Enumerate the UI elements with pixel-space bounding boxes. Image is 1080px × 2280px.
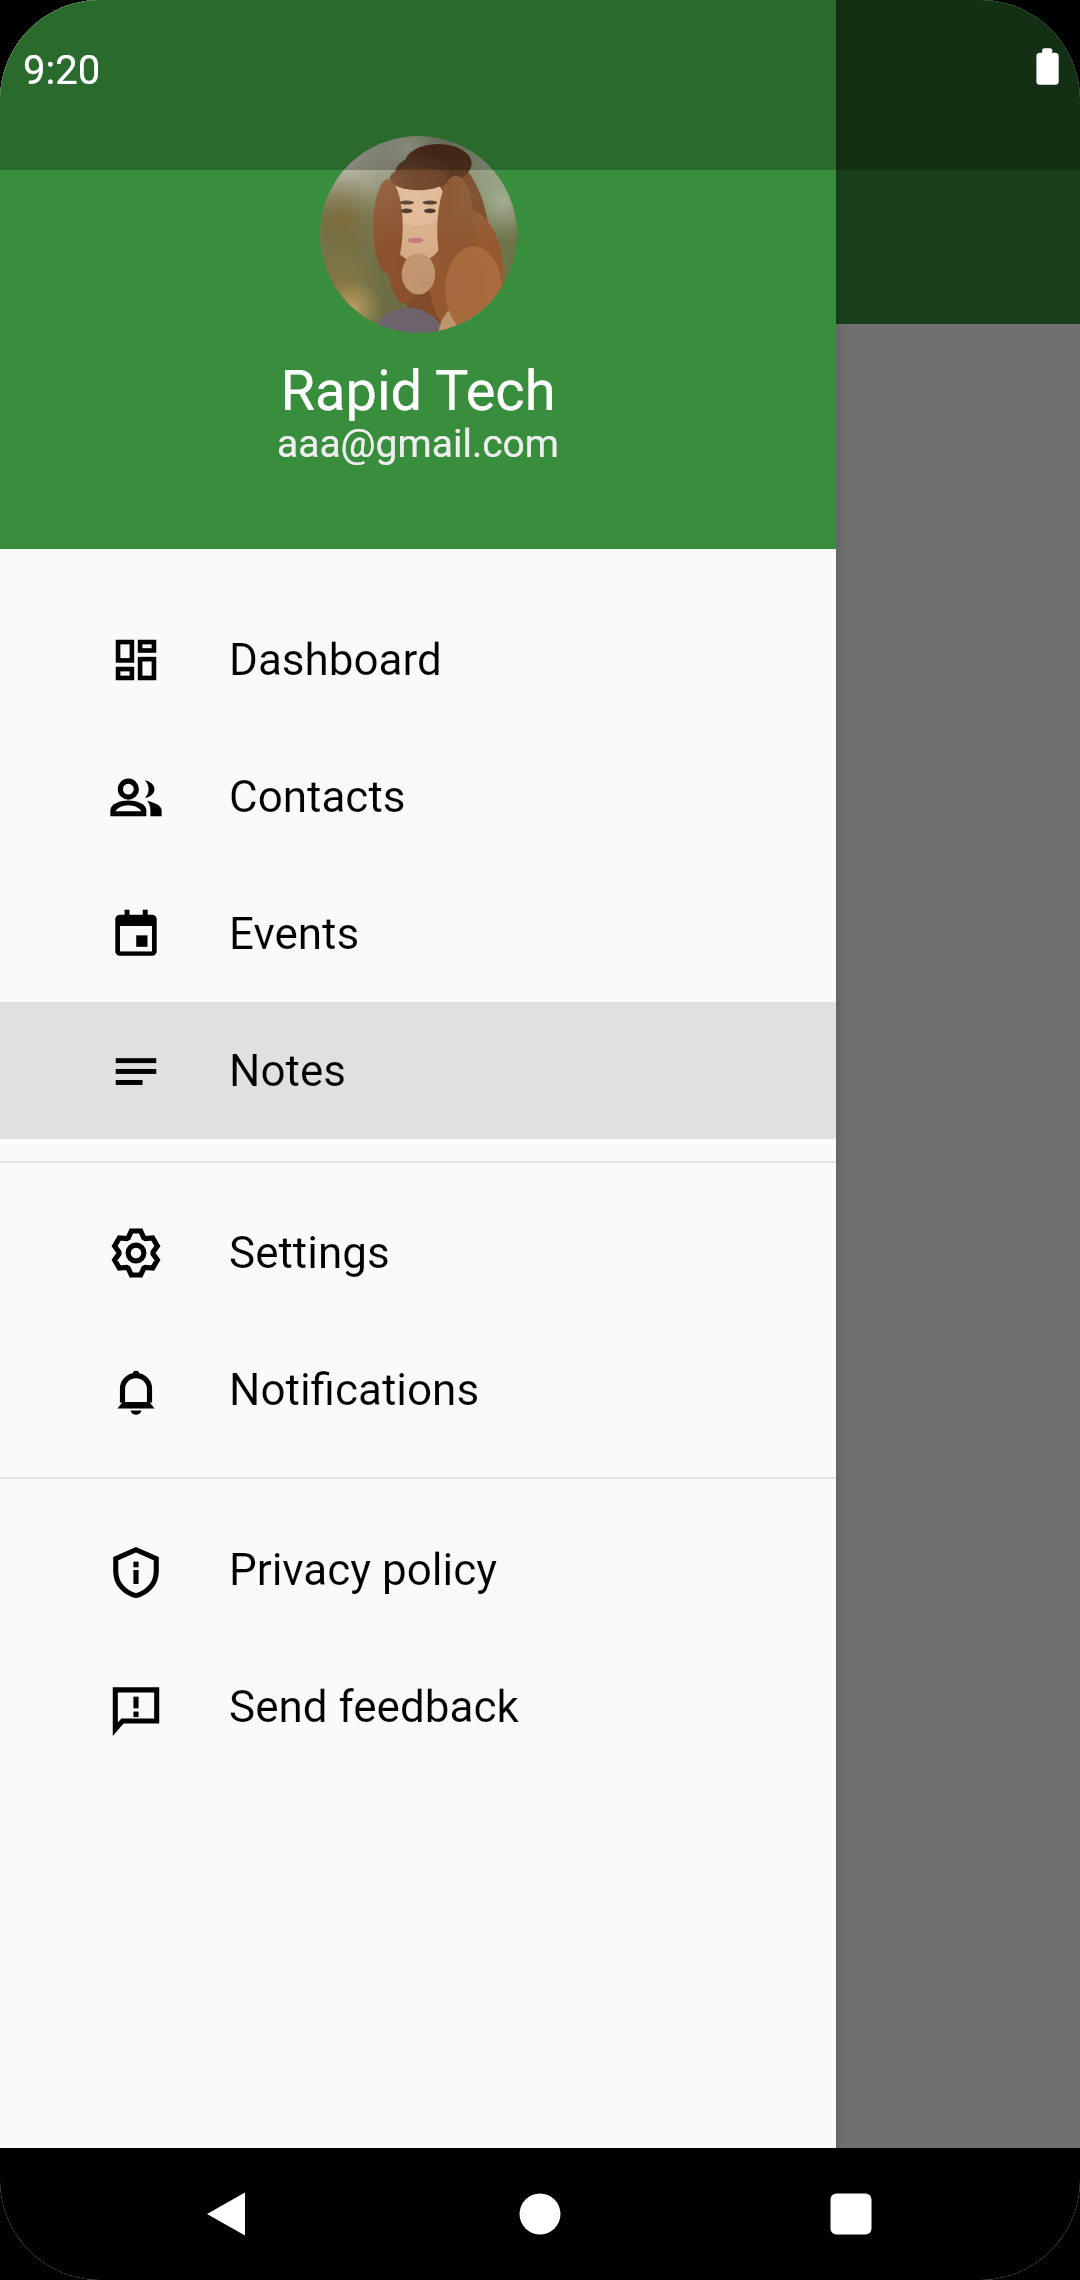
button[interactable]: Events [0, 865, 836, 1002]
button[interactable]: Home [480, 2154, 600, 2274]
button[interactable]: Notifications [0, 1321, 836, 1458]
staticText: Dashboard [229, 634, 442, 686]
staticText: Privacy policy [229, 1544, 498, 1596]
button[interactable]: Send feedback [0, 1638, 836, 1775]
button[interactable]: Contacts [0, 728, 836, 865]
staticText: Contacts [229, 771, 406, 823]
staticText: Events [229, 908, 360, 960]
button[interactable]: Recent apps [791, 2154, 911, 2274]
button[interactable]: Back [166, 2154, 286, 2274]
staticText: Send feedback [229, 1681, 519, 1733]
button[interactable]: Notes [0, 1002, 836, 1139]
staticText: Settings [229, 1227, 390, 1279]
staticText: Notifications [229, 1364, 480, 1416]
staticText: Notes [229, 1045, 346, 1097]
button[interactable]: Dashboard [0, 591, 836, 728]
button[interactable]: Settings [0, 1184, 836, 1321]
staticText: aaa@gmail.com [0, 421, 836, 467]
staticText: Rapid Tech [0, 358, 836, 424]
staticText: 9:20 [23, 47, 101, 94]
button[interactable]: Privacy policy [0, 1501, 836, 1638]
